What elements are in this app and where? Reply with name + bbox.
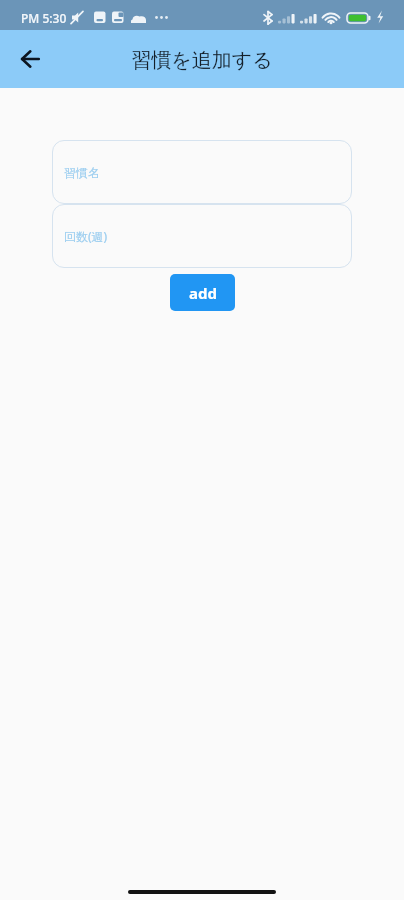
- button[interactable]: 習慣名: [52, 140, 352, 204]
- staticText: PM 5:30: [21, 10, 67, 26]
- staticText: 習慣を追加する: [131, 48, 273, 73]
- staticText: 習慣名: [64, 165, 100, 180]
- staticText: add: [189, 283, 217, 303]
- staticText: 回数(週): [64, 228, 108, 244]
- button[interactable]: Back: [12, 41, 48, 77]
- button[interactable]: add: [170, 274, 235, 311]
- button[interactable]: 回数(週): [52, 204, 352, 268]
